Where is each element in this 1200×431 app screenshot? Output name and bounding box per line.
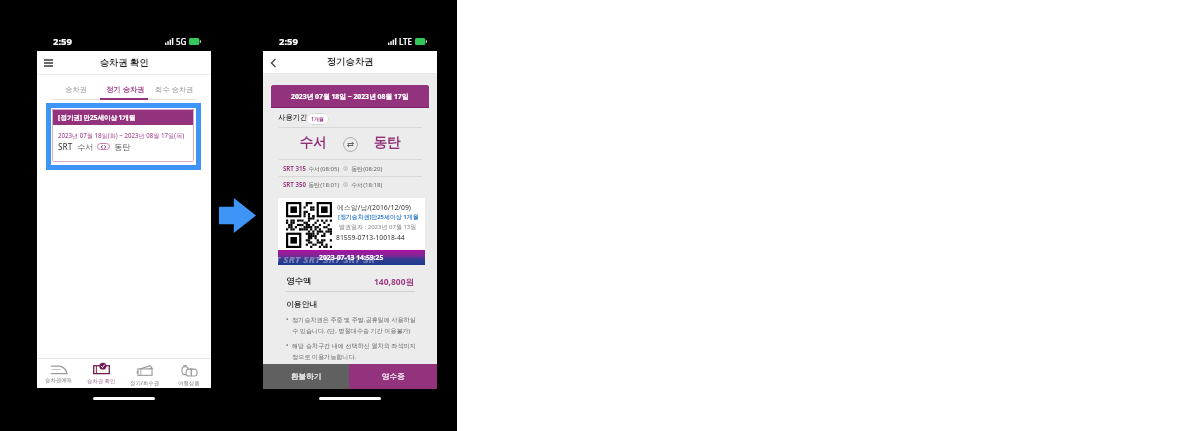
- staticText: 사용기간: [278, 113, 308, 122]
- button[interactable]: 여행상품: [167, 359, 211, 388]
- staticText: 수서: [77, 142, 94, 152]
- staticText: 1개월: [311, 116, 324, 123]
- staticText: SRT 315: [283, 164, 306, 172]
- staticText: SRT: [58, 141, 73, 152]
- staticText: LTE: [399, 36, 413, 47]
- staticText: •: [286, 341, 289, 349]
- button[interactable]: Back: [270, 58, 277, 68]
- button[interactable]: 영수증: [349, 364, 437, 389]
- staticText: 에스알/남/(2016/12/09): [337, 203, 412, 212]
- staticText: 140,800원: [374, 276, 415, 287]
- button[interactable]: 승차권: [50, 80, 102, 98]
- staticText: 환불하기: [291, 372, 322, 382]
- staticText: 수서(08:05): [308, 164, 340, 172]
- staticText: 동탄: [114, 142, 131, 152]
- staticText: 영수증: [382, 372, 405, 382]
- staticText: 회수 승차권: [155, 84, 194, 94]
- staticText: 5G: [176, 36, 187, 47]
- button[interactable]: [정기권] 만25세이상 1개월: [46, 103, 201, 170]
- staticText: 정기승차권: [263, 56, 437, 68]
- staticText: 승차권 확인: [87, 377, 116, 384]
- staticText: 해당 승차구간 내에 선택하신 열차의 좌석미지정으로 이용가능합니다.: [292, 341, 419, 361]
- staticText: 이용안내: [286, 299, 318, 309]
- staticText: 2023년 07월 18일(화) ~ 2023년 08월 17일(목): [58, 131, 185, 139]
- button[interactable]: 회수 승차권: [148, 80, 200, 98]
- staticText: 승차권 확인: [37, 56, 211, 69]
- staticText: T SRT SRT SRT SRT SR: [275, 253, 422, 266]
- staticText: 2023년 07월 18일 ~ 2023년 08월 17일: [291, 92, 409, 101]
- staticText: •: [286, 315, 289, 323]
- button[interactable]: 정기 승차권: [99, 80, 151, 98]
- staticText: 동탄(08:20): [351, 164, 383, 172]
- staticText: [정기권] 만25세이상 1개월: [58, 113, 136, 122]
- staticText: SRT 350: [283, 180, 306, 188]
- button[interactable]: 정기/회수권: [123, 359, 167, 388]
- staticText: 수서: [298, 134, 328, 151]
- button[interactable]: 환불하기: [263, 364, 349, 389]
- button[interactable]: 승차권 확인: [80, 359, 123, 388]
- staticText: 81559-0713-10018-44: [336, 233, 405, 242]
- staticText: 2:59: [279, 35, 298, 48]
- staticText: 정기/회수권: [130, 379, 160, 386]
- staticText: 2023-07-13 14:59:25: [319, 253, 384, 262]
- staticText: 발권일자 : 2023년 07월 13일: [339, 223, 417, 231]
- staticText: 정기 승차권: [106, 84, 145, 94]
- staticText: [정기승차권]만25세이상 1개월: [338, 213, 419, 221]
- staticText: 여행상품: [178, 380, 200, 387]
- staticText: 2:59: [53, 35, 72, 48]
- staticText: 동탄: [372, 134, 402, 151]
- staticText: 수서(18:18): [351, 180, 383, 188]
- staticText: 영수액: [286, 276, 312, 287]
- staticText: 승차권예매: [45, 377, 72, 384]
- staticText: 동탄(18:01): [308, 180, 340, 188]
- staticText: 승차권: [65, 85, 87, 94]
- button[interactable]: Menu: [44, 59, 53, 67]
- button[interactable]: 승차권예매: [37, 359, 80, 388]
- staticText: 정기승차권은 주중 및 주말,공휴일에 사용하실 수 있습니다. (단, 명절대…: [292, 315, 419, 335]
